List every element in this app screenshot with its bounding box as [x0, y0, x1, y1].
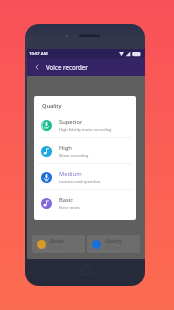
staticText: 10:57 AM [29, 51, 48, 57]
button[interactable]: Back [30, 60, 44, 74]
button[interactable]: Medium [34, 164, 136, 190]
staticText: Voice recorder [46, 63, 88, 71]
staticText: Medium [59, 170, 82, 178]
staticText: Mode [50, 238, 64, 245]
staticText: Basic [59, 196, 74, 204]
button[interactable]: Superior [34, 112, 136, 138]
button[interactable]: High [34, 138, 136, 164]
staticText: Quality [42, 102, 62, 110]
staticText: Superior [59, 118, 83, 126]
staticText: Lectures and speeches [59, 179, 101, 184]
button[interactable]: Mode [32, 235, 85, 253]
button[interactable]: Quality [87, 235, 140, 253]
button[interactable]: Basic [34, 190, 136, 216]
staticText: High [59, 144, 72, 152]
staticText: Quality [105, 238, 122, 245]
staticText: Music recording [59, 153, 89, 158]
staticText: Voice notes [59, 205, 80, 210]
staticText: High fidelity music recording [59, 127, 112, 132]
